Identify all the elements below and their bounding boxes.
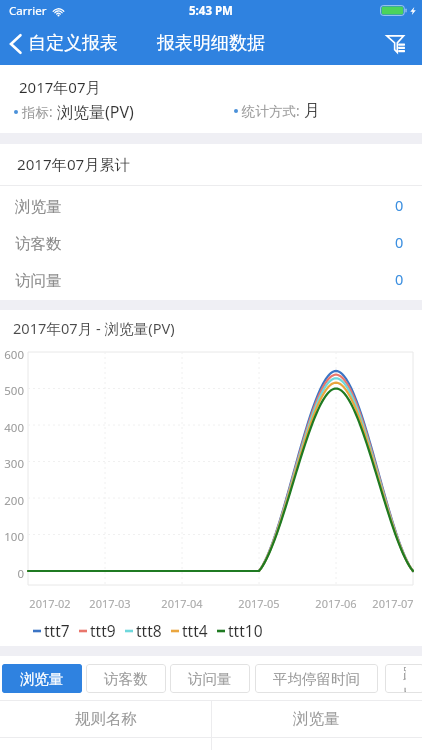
staticText: 2017年07月 [19,77,101,97]
staticText: 访问量 [188,670,232,688]
button[interactable]: Filter [378,24,422,63]
staticText: 2017年07月 - 浏览量(PV) [13,318,175,338]
staticText: 500 [0,383,24,399]
button[interactable]: 跳出率 [385,664,422,693]
staticText: 5:43 PM [189,3,233,19]
button[interactable]: 访客数 [0,225,422,262]
staticText: 400 [0,420,24,436]
staticText: 统计方式: [242,102,304,120]
staticText: 跳出率 [403,664,406,693]
staticText: 2017-06 [306,596,366,611]
staticText: ttt10 [228,620,263,641]
staticText: 浏览量 [20,670,64,688]
button[interactable]: 访问量 [0,262,422,299]
staticText: 自定义报表 [28,32,118,55]
staticText: 指标: [22,103,57,121]
staticText: 浏览量 [15,197,62,217]
staticText: 200 [0,493,24,509]
staticText: 浏览量 [293,709,340,729]
staticText: ttt7 [44,620,70,641]
staticText: 600 [0,347,24,363]
staticText: 100 [0,529,24,545]
staticText: 访问量 [15,271,62,291]
staticText: Carrier [9,3,47,19]
staticText: 2017-02 [20,596,80,611]
staticText: 月 [304,101,320,121]
staticText: 0 [395,232,404,252]
staticText: 访客数 [104,670,148,688]
staticText: 2017-07 [363,596,422,611]
staticText: 2017-03 [80,596,140,611]
button[interactable]: 访客数 [86,664,166,693]
button[interactable]: 浏览量 [2,664,82,693]
button[interactable]: 平均停留时间 [255,664,378,693]
staticText: 规则名称 [75,709,137,729]
staticText: 2017-05 [229,596,289,611]
staticText: 浏览量(PV) [57,101,134,123]
staticText: ttt8 [136,620,162,641]
button[interactable]: 浏览量 [0,188,422,225]
staticText: 访客数 [15,234,62,254]
staticText: 2017年07月累计 [17,154,130,175]
staticText: ttt9 [90,620,116,641]
staticText: 0 [395,195,404,215]
staticText: 0 [0,566,24,582]
staticText: ttt4 [182,620,208,641]
button[interactable]: 自定义报表 [0,27,126,60]
staticText: 报表明细数据 [157,32,265,55]
staticText: 0 [395,269,404,289]
staticText: 300 [0,456,24,472]
staticText: 2017-04 [152,596,212,611]
staticText: 平均停留时间 [273,670,360,688]
button[interactable]: 访问量 [170,664,250,693]
